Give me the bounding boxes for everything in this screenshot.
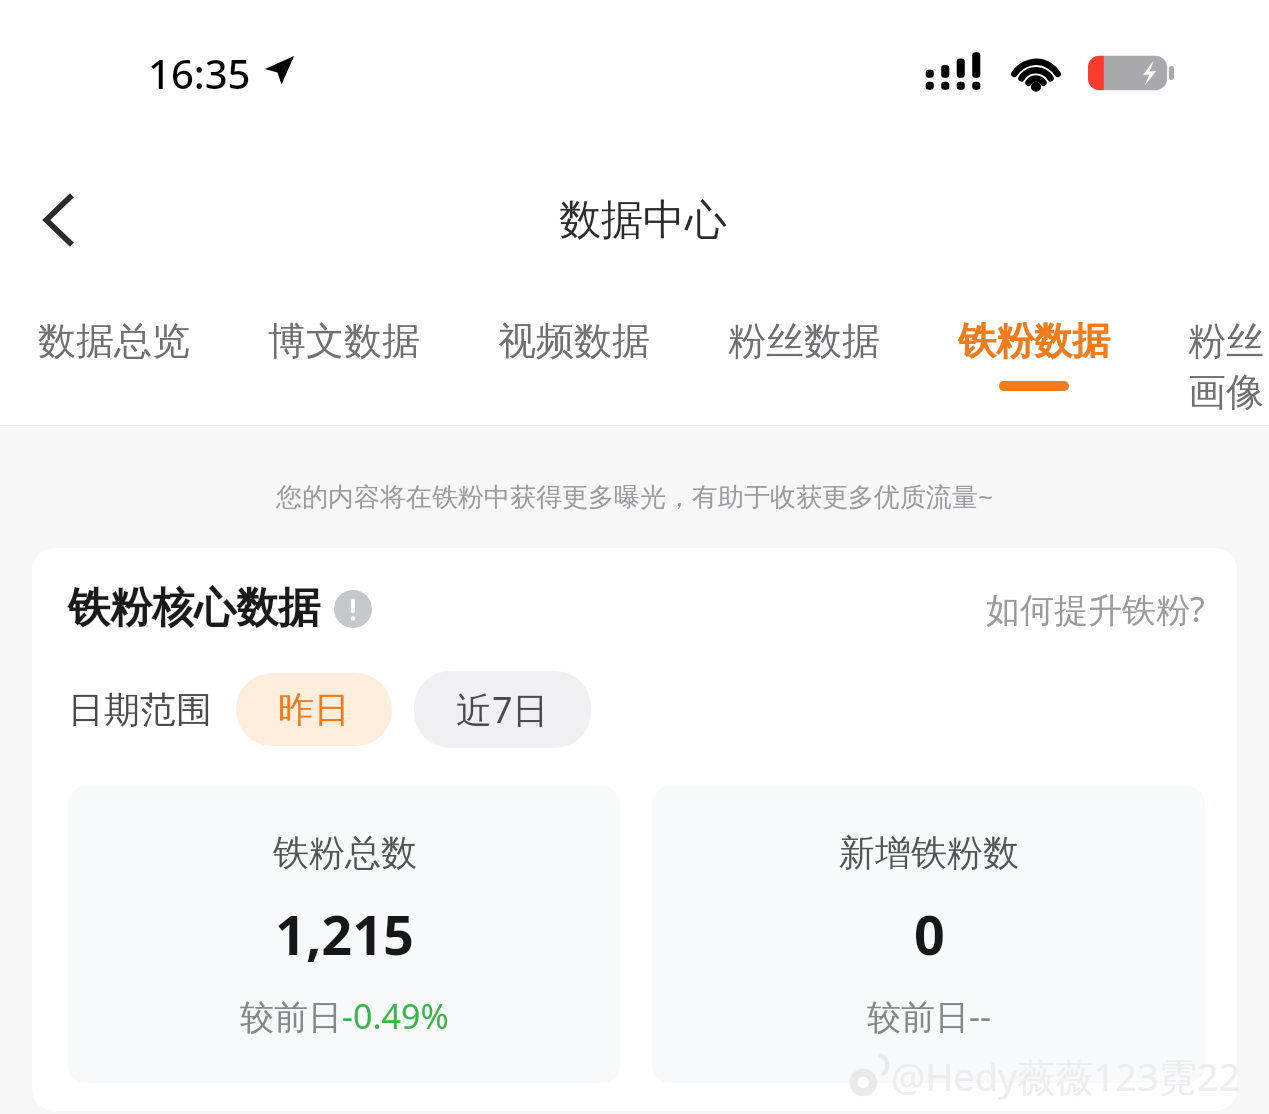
button[interactable]: 粉丝画像 [1188, 295, 1269, 425]
button[interactable]: 新增铁粉数 [652, 786, 1205, 1083]
button[interactable]: Back [22, 182, 98, 258]
button[interactable]: 铁粉数据 [958, 295, 1110, 391]
staticText: 您的内容将在铁粉中获得更多曝光，有助于收获更多优质流量~ [0, 478, 1269, 514]
staticText: 铁粉核心数据 [68, 582, 320, 635]
staticText: 铁粉数据 [958, 317, 1110, 365]
button[interactable]: 近7日 [414, 671, 591, 748]
staticText: 近7日 [456, 685, 549, 734]
staticText: 数据总览 [38, 317, 190, 365]
staticText: 较前日-0.49% [240, 993, 449, 1039]
button[interactable]: 数据总览 [38, 295, 190, 391]
staticText: 1,215 [275, 897, 414, 971]
button[interactable]: 铁粉总数 [68, 786, 620, 1083]
staticText: 博文数据 [268, 317, 420, 365]
staticText: 粉丝数据 [728, 317, 880, 365]
button[interactable]: 如何提升铁粉? [986, 586, 1205, 632]
button[interactable]: 博文数据 [268, 295, 420, 391]
button[interactable]: 粉丝数据 [728, 295, 880, 391]
staticText: 16:35 [148, 46, 251, 100]
staticText: 较前日-- [867, 993, 991, 1039]
staticText: 如何提升铁粉? [986, 586, 1205, 632]
staticText: 粉丝画像 [1188, 317, 1269, 417]
button[interactable]: 说明 [334, 590, 372, 628]
staticText: 日期范围 [68, 687, 212, 732]
staticText: 0 [914, 897, 945, 971]
staticText: @Hedy薇薇123霓22 [891, 1050, 1241, 1102]
staticText: 新增铁粉数 [839, 830, 1019, 875]
staticText: 数据中心 [559, 194, 727, 247]
button[interactable]: 视频数据 [498, 295, 650, 391]
staticText: 视频数据 [498, 317, 650, 365]
staticText: 铁粉总数 [273, 830, 417, 875]
staticText: 昨日 [278, 687, 350, 732]
button[interactable]: 昨日 [236, 673, 392, 746]
